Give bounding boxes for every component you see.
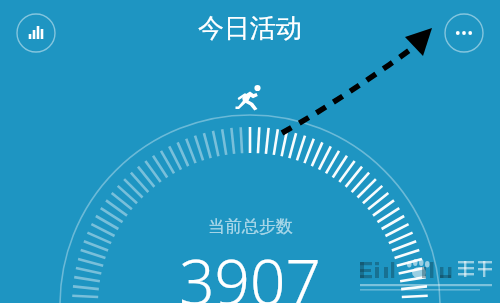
staticText: 当前总步数 <box>208 216 293 237</box>
button[interactable]: More options <box>444 13 484 53</box>
staticText: 今日活动 <box>198 12 302 45</box>
staticText: 3907 <box>179 239 321 303</box>
button[interactable]: Statistics <box>16 13 56 53</box>
